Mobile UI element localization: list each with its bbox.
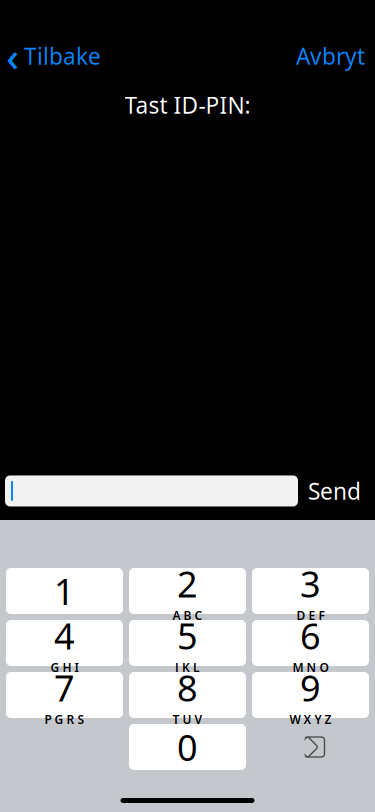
button[interactable]: 8 [129,672,246,718]
staticText: T U V [172,711,202,727]
staticText: Send [308,476,361,506]
staticText: P G R S [44,711,84,727]
staticText: 1 [54,567,75,615]
button[interactable]: Avbryt [296,35,375,77]
button[interactable]: 2 [129,568,246,614]
button[interactable]: 1 [6,568,123,614]
staticText: A B C [172,607,202,623]
button[interactable]: 5 [129,620,246,666]
staticText: 8 [177,664,198,711]
staticText: M N O [292,659,328,675]
staticText: D E F [296,607,324,623]
staticText: 7 [54,664,75,711]
button[interactable]: ‹ [0,23,101,88]
button[interactable]: 6 [252,620,369,666]
staticText: Tast ID-PIN: [124,90,250,120]
staticText: 2 [177,560,198,607]
button[interactable] [252,724,369,770]
staticText: G H I [50,659,78,675]
staticText: 0 [177,723,198,771]
staticText: ‹ [6,29,19,82]
button[interactable]: 9 [252,672,369,718]
button[interactable]: 7 [6,672,123,718]
staticText: 5 [177,612,198,659]
staticText: J K L [175,659,200,675]
staticText: 4 [54,612,75,659]
staticText: 9 [300,664,321,711]
staticText: 6 [300,612,321,659]
button[interactable]: Send [298,470,371,512]
staticText: 3 [300,560,321,607]
staticText: W X Y Z [289,711,331,727]
button[interactable]: 4 [6,620,123,666]
staticText: Tilbake [24,41,101,71]
button[interactable]: 0 [129,724,246,770]
staticText: Avbryt [296,41,365,71]
button[interactable]: 3 [252,568,369,614]
